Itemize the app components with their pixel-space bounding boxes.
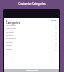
button[interactable]: Dining [4,34,59,37]
staticText: Health [6,41,13,44]
button[interactable]: Done [51,19,59,22]
staticText: Utilities [6,31,14,34]
button[interactable]: Health [4,41,59,44]
staticText: Groceries [6,24,16,27]
staticText: Travel [6,44,13,47]
button[interactable]: Back [5,19,8,22]
staticText: Other [6,48,12,51]
button[interactable]: Other [4,48,59,51]
staticText: Categories [6,21,20,25]
staticText: Customize Categories [18,2,46,6]
button[interactable]: Travel [4,44,59,47]
staticText: Dining [6,34,13,37]
staticText: Done [51,19,57,22]
button[interactable]: Groceries [4,24,59,27]
staticText: Transport [6,27,16,30]
button[interactable]: Utilities [4,31,59,34]
button[interactable]: Shopping [4,37,59,40]
button[interactable]: Transport [4,27,59,30]
staticText: Shopping [6,37,16,40]
